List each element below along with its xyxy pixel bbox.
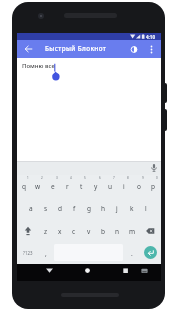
button[interactable]: x (53, 220, 67, 242)
button[interactable]: ?123 (17, 242, 39, 264)
staticText: , (45, 249, 47, 258)
button[interactable]: g (82, 197, 96, 219)
staticText: 5 (84, 176, 86, 180)
staticText: n (115, 227, 120, 236)
button[interactable]: , (39, 242, 53, 264)
staticText: x (58, 227, 62, 236)
button[interactable]: k (125, 197, 139, 219)
button[interactable] (127, 42, 141, 56)
button[interactable]: l (139, 197, 153, 219)
button[interactable]: i (117, 175, 131, 197)
button[interactable] (144, 246, 157, 259)
staticText: 3 (56, 176, 58, 180)
staticText: Быстрый Блокнот (45, 44, 107, 53)
button[interactable]: n (110, 220, 124, 242)
button[interactable]: w (31, 175, 45, 197)
button[interactable]: z (39, 220, 53, 242)
staticText: p (151, 182, 155, 191)
staticText: 8 (127, 176, 129, 180)
staticText: k (130, 204, 134, 213)
button[interactable]: o (132, 175, 146, 197)
staticText: 1 (27, 176, 29, 180)
staticText: l (145, 204, 147, 213)
button[interactable]: v (82, 220, 96, 242)
staticText: t (80, 182, 83, 191)
button[interactable]: j (110, 197, 124, 219)
staticText: z (44, 227, 48, 236)
button[interactable] (118, 264, 133, 278)
staticText: 6 (99, 176, 101, 180)
staticText: 0 (156, 176, 158, 180)
staticText: h (101, 204, 106, 213)
staticText: 9 (142, 176, 144, 180)
staticText: 2 (41, 176, 43, 180)
button[interactable] (80, 264, 95, 278)
button[interactable] (147, 161, 161, 175)
button[interactable]: a (24, 197, 38, 219)
staticText: ?123 (23, 250, 33, 256)
button[interactable]: t (74, 175, 88, 197)
staticText: y (94, 182, 98, 191)
staticText: Помню все (22, 62, 55, 70)
staticText: w (35, 182, 41, 191)
button[interactable] (139, 220, 161, 242)
staticText: m (129, 227, 136, 236)
button[interactable] (138, 265, 151, 277)
staticText: c (72, 227, 76, 236)
staticText: j (116, 204, 118, 213)
button[interactable]: h (96, 197, 110, 219)
button[interactable]: Помню все (17, 58, 161, 161)
staticText: i (123, 182, 125, 191)
button[interactable] (17, 220, 39, 242)
button[interactable]: r (60, 175, 74, 197)
button[interactable]: q (17, 175, 31, 197)
staticText: g (87, 204, 91, 213)
staticText: d (58, 204, 62, 213)
button[interactable]: p (146, 175, 160, 197)
button[interactable]: y (89, 175, 103, 197)
staticText: s (44, 204, 48, 213)
staticText: b (101, 227, 105, 236)
staticText: e (51, 182, 55, 191)
button[interactable]: u (103, 175, 117, 197)
staticText: 4:10 (146, 34, 155, 40)
staticText: u (108, 182, 113, 191)
button[interactable]: c (67, 220, 81, 242)
button[interactable] (42, 264, 57, 278)
staticText: r (66, 182, 69, 191)
staticText: 4 (70, 176, 72, 180)
staticText: o (137, 182, 141, 191)
staticText: 7 (113, 176, 115, 180)
button[interactable] (20, 41, 36, 57)
staticText: . (131, 249, 133, 258)
staticText: q (22, 182, 26, 191)
staticText: a (29, 204, 33, 213)
button[interactable] (145, 42, 158, 55)
button[interactable]: d (53, 197, 67, 219)
button[interactable]: f (67, 197, 81, 219)
button[interactable]: b (96, 220, 110, 242)
staticText: f (73, 204, 76, 213)
button[interactable]: e (46, 175, 60, 197)
button[interactable]: s (39, 197, 53, 219)
button[interactable]: m (125, 220, 139, 242)
button[interactable]: . (125, 242, 139, 264)
staticText: v (87, 227, 91, 236)
